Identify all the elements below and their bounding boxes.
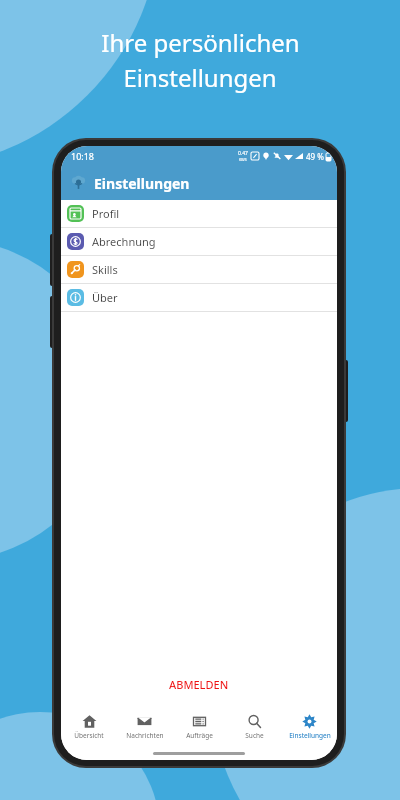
button[interactable]: Nachrichten: [117, 708, 172, 746]
button[interactable]: Suche: [227, 708, 282, 746]
button[interactable]: Einstellungen: [282, 708, 337, 746]
staticText: Über: [92, 290, 118, 305]
staticText: Skills: [92, 262, 118, 277]
staticText: Ihre persönlichen: [101, 26, 300, 59]
staticText: Übersicht: [74, 731, 104, 740]
staticText: Einstellungen: [94, 174, 190, 193]
staticText: KB/S: [239, 157, 247, 162]
button[interactable]: Über: [61, 284, 337, 311]
staticText: 0.47: [238, 150, 248, 157]
staticText: Nachrichten: [126, 731, 164, 740]
button[interactable]: Profil: [61, 200, 337, 227]
staticText: Einstellungen: [123, 61, 277, 94]
button[interactable]: Übersicht: [61, 708, 117, 746]
button[interactable]: Skills: [61, 256, 337, 283]
staticText: 10:18: [71, 150, 95, 162]
staticText: 49 %: [306, 151, 324, 162]
button[interactable]: Abrechnung: [61, 228, 337, 255]
button[interactable]: ABMELDEN: [61, 669, 337, 700]
staticText: ABMELDEN: [169, 677, 229, 692]
staticText: Einstellungen: [289, 731, 331, 740]
staticText: Suche: [245, 731, 264, 740]
staticText: Abrechnung: [92, 234, 156, 249]
button[interactable]: Aufträge: [172, 708, 227, 746]
staticText: Profil: [92, 206, 120, 221]
staticText: Aufträge: [186, 731, 213, 740]
